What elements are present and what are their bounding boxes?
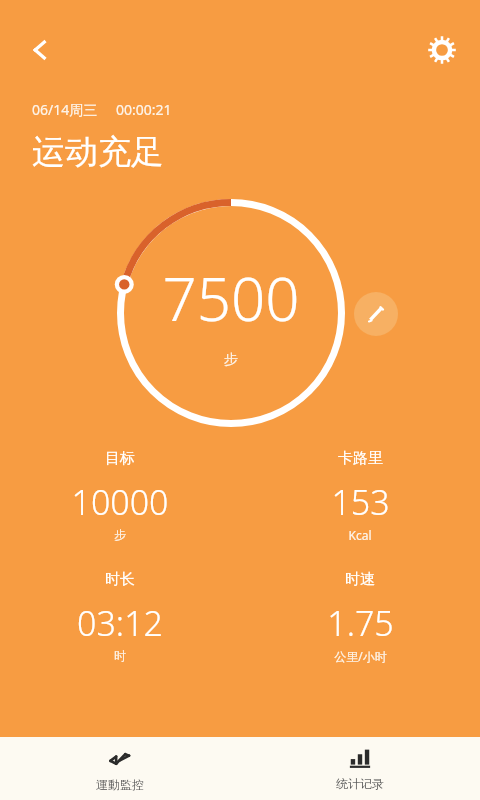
staticText: 公里/小时 — [334, 648, 387, 664]
staticText: 目标 — [105, 449, 135, 468]
staticText: 时速 — [345, 570, 375, 589]
button[interactable]: Back — [16, 26, 64, 74]
staticText: 运动充足 — [32, 131, 164, 173]
button[interactable]: 運動監控 — [0, 737, 240, 800]
staticText: 運動監控 — [96, 777, 144, 792]
staticText: 153 — [331, 479, 390, 525]
staticText: 06/14周三 — [32, 100, 98, 119]
staticText: 统计记录 — [336, 776, 384, 791]
staticText: 步 — [114, 527, 126, 542]
button[interactable]: Settings — [418, 26, 466, 74]
staticText: 卡路里 — [338, 449, 383, 468]
staticText: 步 — [224, 351, 238, 369]
staticText: 7500 — [162, 257, 300, 339]
staticText: 03:12 — [77, 600, 163, 646]
staticText: 时长 — [105, 570, 135, 589]
staticText: 00:00:21 — [116, 100, 172, 119]
staticText: 时 — [114, 648, 126, 663]
button[interactable]: 统计记录 — [240, 737, 480, 800]
staticText: 10000 — [71, 479, 169, 525]
staticText: Kcal — [348, 527, 372, 543]
button[interactable]: Edit goal — [354, 292, 398, 336]
staticText: 1.75 — [327, 600, 394, 646]
